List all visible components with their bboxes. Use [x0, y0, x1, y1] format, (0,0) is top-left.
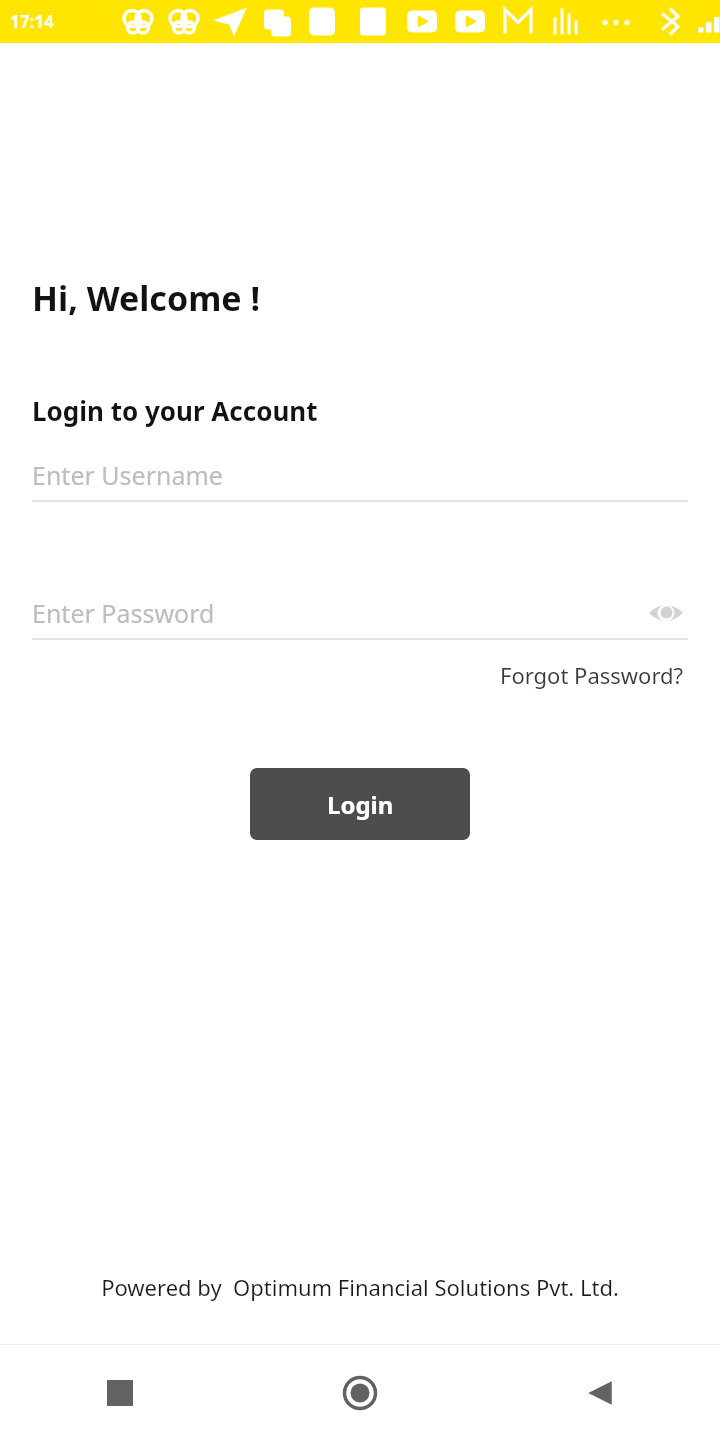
button[interactable]: Recents	[0, 1345, 240, 1440]
button[interactable]: Enter Username	[32, 450, 688, 502]
staticText: Enter Password	[32, 596, 644, 630]
button[interactable]: Back	[480, 1345, 720, 1440]
staticText: Hi, Welcome !	[32, 275, 261, 321]
button[interactable]: Forgot Password?	[494, 654, 690, 696]
staticText: Powered by Optimum Financial Solutions P…	[101, 1272, 619, 1302]
staticText: Login to your Account	[32, 393, 318, 428]
staticText: 17:14	[10, 10, 54, 33]
button[interactable]: Home	[240, 1345, 480, 1440]
button[interactable]: Login	[250, 768, 470, 840]
staticText: Forgot Password?	[500, 660, 684, 690]
button[interactable]: Enter Password	[32, 588, 688, 638]
staticText: Login	[327, 788, 394, 821]
button[interactable]: Show password	[644, 591, 688, 635]
staticText: Enter Username	[32, 458, 223, 492]
